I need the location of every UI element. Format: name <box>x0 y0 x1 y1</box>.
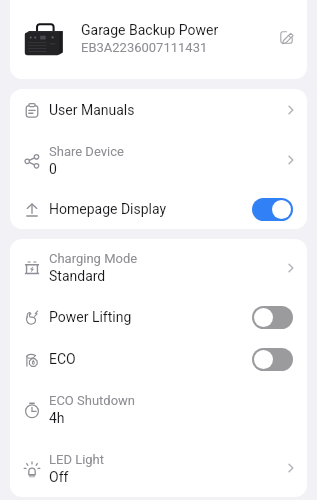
button[interactable]: Charging Mode <box>10 239 307 296</box>
button[interactable]: Share Device <box>10 131 307 189</box>
button[interactable]: Homepage Display <box>10 189 307 229</box>
staticText: Homepage Display <box>49 201 167 217</box>
button[interactable]: LED Light <box>10 439 307 497</box>
staticText: Power Lifting <box>49 309 132 325</box>
staticText: LED Light <box>49 452 105 467</box>
staticText: Off <box>49 469 69 485</box>
staticText: ECO <box>49 351 76 367</box>
button[interactable]: ECO <box>10 338 307 380</box>
staticText: Charging Mode <box>49 251 138 266</box>
staticText: Share Device <box>49 144 124 159</box>
button[interactable]: Switch off <box>252 306 293 329</box>
staticText: 0 <box>49 161 57 177</box>
staticText: EB3A2236007111431 <box>81 40 208 55</box>
button[interactable]: ECO Shutdown <box>10 380 307 439</box>
button[interactable]: Power Lifting <box>10 296 307 338</box>
staticText: Standard <box>49 268 106 284</box>
staticText: 4h <box>49 410 65 426</box>
staticText: Garage Backup Power <box>81 22 219 38</box>
button[interactable]: Switch off <box>252 348 293 371</box>
button[interactable]: Edit device name <box>273 24 299 50</box>
button[interactable]: Garage Backup Power <box>10 0 307 79</box>
staticText: User Manuals <box>49 102 135 118</box>
button[interactable]: Switch on <box>252 198 293 221</box>
staticText: ECO Shutdown <box>49 393 136 408</box>
button[interactable]: User Manuals <box>10 89 307 131</box>
